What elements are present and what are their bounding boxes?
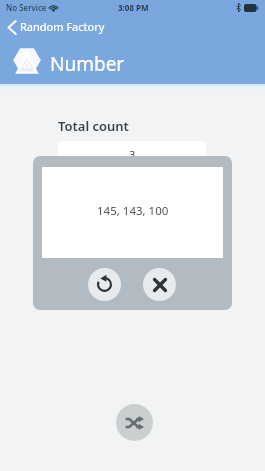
staticText: Number bbox=[50, 51, 125, 77]
button[interactable]: Shuffle bbox=[116, 404, 153, 441]
button[interactable]: 3 bbox=[58, 141, 206, 167]
button[interactable]: Refresh bbox=[88, 268, 121, 301]
staticText: 3 bbox=[129, 147, 136, 162]
staticText: 145, 143, 100 bbox=[97, 203, 169, 219]
button[interactable]: Close bbox=[143, 268, 176, 301]
staticText: Random Factory bbox=[20, 19, 105, 34]
staticText: No Service bbox=[6, 2, 47, 13]
staticText: 3:08 PM bbox=[118, 2, 149, 13]
staticText: Total count bbox=[58, 117, 129, 135]
button[interactable]: Random Factory bbox=[4, 17, 108, 38]
